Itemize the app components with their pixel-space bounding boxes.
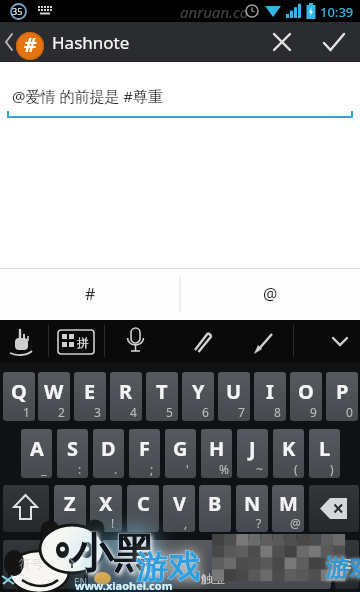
staticText: 6 — [202, 404, 209, 420]
staticText: C — [137, 490, 150, 517]
staticText: A — [30, 435, 44, 462]
staticText: X — [99, 490, 113, 517]
button[interactable] — [309, 485, 359, 532]
staticText: Hashnote — [52, 31, 130, 54]
button[interactable]: U — [218, 372, 250, 421]
staticText: W — [44, 378, 64, 405]
staticText: www.xiaohei.com — [75, 578, 173, 592]
button[interactable]: , — [52, 540, 84, 589]
button[interactable]: G — [165, 429, 196, 478]
staticText: H — [209, 435, 225, 462]
staticText: Y — [192, 378, 205, 405]
button[interactable]: O — [290, 372, 322, 421]
button[interactable]: F — [129, 429, 160, 478]
staticText: 7 — [238, 404, 245, 420]
staticText: 游戏 — [325, 553, 360, 583]
staticText: P — [336, 378, 349, 405]
button[interactable]: N — [236, 485, 268, 532]
staticText: 拼 — [77, 335, 89, 350]
staticText: 5 — [166, 404, 173, 420]
staticText: Z — [64, 490, 76, 517]
button[interactable]: T — [146, 372, 178, 421]
staticText: J — [249, 435, 256, 462]
staticText: D — [101, 435, 116, 462]
staticText: , — [184, 515, 188, 531]
button[interactable]: Z — [54, 485, 86, 532]
staticText: 35 — [12, 5, 23, 17]
staticText: # — [85, 283, 96, 305]
button[interactable] — [258, 22, 306, 62]
staticText: N — [244, 490, 261, 517]
button[interactable]: B — [199, 485, 231, 532]
staticText: L — [319, 435, 331, 462]
staticText: % — [219, 461, 229, 477]
button[interactable]: A — [21, 429, 52, 478]
staticText: 4 — [130, 404, 137, 420]
staticText: ; — [150, 461, 154, 477]
button[interactable]: Q — [3, 372, 35, 421]
button[interactable] — [335, 540, 359, 589]
staticText: ! — [111, 515, 115, 531]
button[interactable]: C — [127, 485, 159, 532]
staticText: , — [66, 549, 71, 571]
button[interactable]: E — [74, 372, 106, 421]
staticText: F — [139, 435, 150, 462]
button[interactable]: M — [272, 485, 304, 532]
staticText: 符号 — [19, 556, 43, 571]
button[interactable]: K — [273, 429, 304, 478]
staticText: M — [279, 490, 298, 517]
staticText: . — [114, 461, 118, 477]
staticText: 游戏 — [136, 547, 200, 587]
staticText: anruan.co — [180, 2, 249, 22]
staticText: 符号 — [14, 557, 38, 572]
staticText: 游戏 — [136, 547, 200, 587]
staticText: 3 — [94, 404, 101, 420]
button[interactable]: W — [38, 372, 70, 421]
button[interactable]: I — [254, 372, 286, 421]
button[interactable]: S — [57, 429, 88, 478]
staticText: 9 — [310, 404, 317, 420]
staticText: O — [298, 378, 314, 405]
staticText: E — [84, 378, 96, 405]
staticText: 0 — [346, 404, 353, 420]
staticText: 小黑 — [71, 528, 155, 581]
staticText: ) — [330, 461, 334, 477]
button[interactable]: 符号 — [3, 540, 49, 589]
button[interactable] — [310, 22, 358, 62]
staticText: ~ — [256, 461, 263, 477]
button[interactable]: D — [93, 429, 124, 478]
button[interactable]: L — [309, 429, 340, 478]
staticText: ( — [294, 461, 298, 477]
staticText: R — [119, 378, 133, 405]
staticText: Q — [11, 378, 27, 405]
staticText: 2 — [58, 404, 65, 420]
staticText: 小黑 — [71, 528, 155, 581]
button[interactable] — [3, 485, 49, 532]
button[interactable]: V — [163, 485, 195, 532]
staticText: V — [173, 490, 186, 517]
button[interactable]: @ — [180, 268, 360, 320]
staticText: K — [282, 435, 296, 462]
staticText: T — [156, 378, 168, 405]
staticText: G — [173, 435, 188, 462]
button[interactable]: J — [237, 429, 268, 478]
staticText: ? — [256, 515, 262, 531]
staticText: @爱情 的前提是 #尊重 — [12, 86, 163, 106]
staticText: _ — [41, 461, 47, 477]
staticText: 8 — [274, 404, 281, 420]
staticText: I — [266, 378, 274, 405]
staticText: 10:39 — [320, 3, 354, 21]
button[interactable]: # — [0, 268, 180, 320]
button[interactable]: H — [201, 429, 232, 478]
button[interactable]: P — [326, 372, 358, 421]
button[interactable]: R — [110, 372, 142, 421]
button[interactable]: X — [90, 485, 122, 532]
button[interactable] — [88, 540, 331, 589]
staticText: U — [226, 378, 242, 405]
staticText: 1 — [23, 404, 30, 420]
staticText: : — [78, 461, 82, 477]
staticText: # — [24, 32, 37, 58]
staticText: ' — [186, 461, 189, 477]
staticText: S — [67, 435, 79, 462]
button[interactable]: Y — [182, 372, 214, 421]
